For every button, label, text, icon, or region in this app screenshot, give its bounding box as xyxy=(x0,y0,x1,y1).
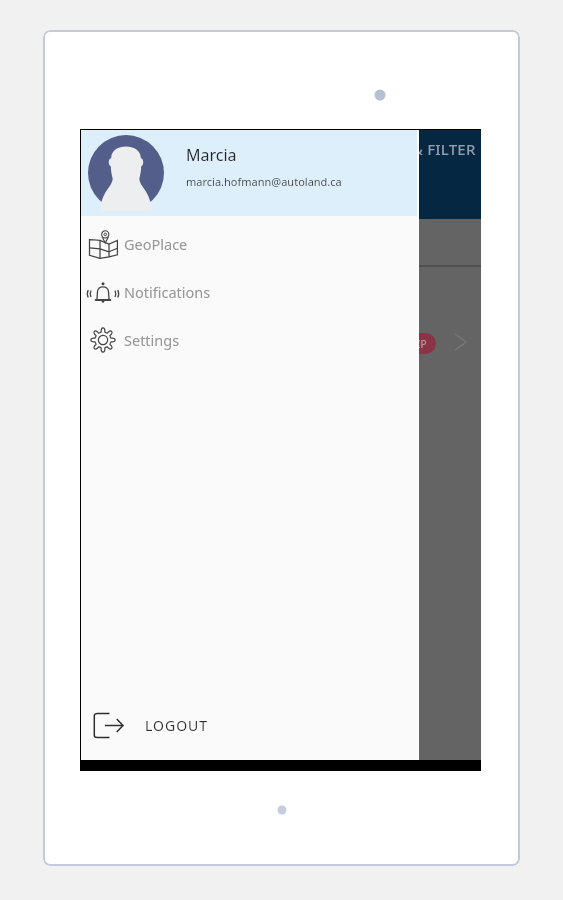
button[interactable]: GeoPlace xyxy=(81,220,419,268)
staticText: Marcia xyxy=(186,144,237,166)
staticText: VIP xyxy=(411,337,427,351)
button[interactable]: Notifications xyxy=(81,268,419,316)
staticText: Notifications xyxy=(124,282,211,302)
staticText: GeoPlace xyxy=(124,234,188,254)
staticText: SORT & FILTER xyxy=(369,139,481,159)
button[interactable]: Settings xyxy=(81,316,419,364)
staticText: marcia.hofmann@autoland.ca xyxy=(186,174,342,189)
button[interactable]: LOGOUT xyxy=(81,700,419,750)
staticText: LOGOUT xyxy=(145,716,209,735)
button[interactable]: Marcia xyxy=(81,130,419,216)
staticText: Settings xyxy=(124,330,180,350)
